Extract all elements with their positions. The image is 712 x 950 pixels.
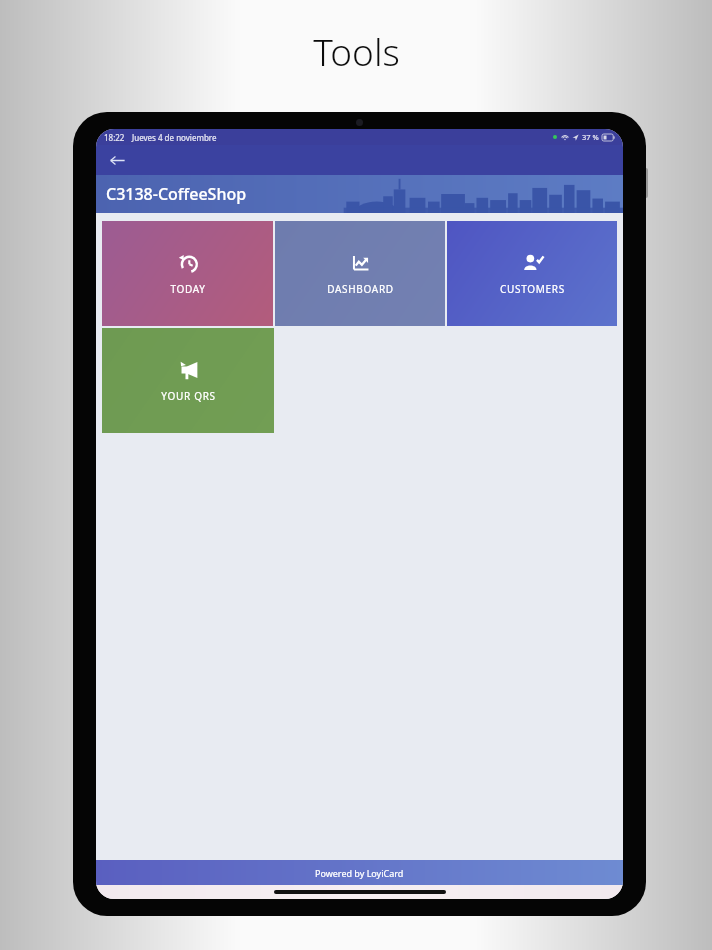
button[interactable]: CUSTOMERS	[447, 221, 617, 326]
staticText: TODAY	[170, 282, 206, 296]
button[interactable]: Back	[102, 145, 132, 175]
staticText: YOUR QRS	[161, 389, 216, 403]
button[interactable]: DASHBOARD	[275, 221, 445, 326]
staticText: 37 %	[582, 132, 599, 142]
button[interactable]: YOUR QRS	[102, 328, 274, 433]
staticText: CUSTOMERS	[500, 282, 565, 296]
button[interactable]: TODAY	[102, 221, 273, 326]
staticText: Powered by LoyiCard	[315, 867, 404, 879]
button[interactable]: Powered by LoyiCard	[96, 860, 623, 885]
staticText: 18:22	[104, 132, 125, 143]
staticText: Jueves 4 de noviembre	[132, 132, 217, 143]
staticText: Tools	[313, 26, 400, 76]
staticText: C3138-CoffeeShop	[106, 183, 247, 205]
staticText: DASHBOARD	[327, 282, 394, 296]
